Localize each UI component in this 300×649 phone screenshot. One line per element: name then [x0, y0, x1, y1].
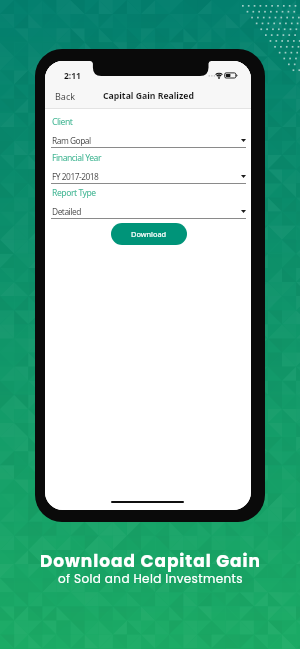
- staticText: Capital Gain Realized: [103, 90, 194, 102]
- staticText: Report Type: [52, 187, 96, 199]
- staticText: FY 2017-2018: [52, 171, 99, 182]
- button[interactable]: Client: [51, 119, 246, 148]
- staticText: Back: [55, 90, 76, 102]
- button[interactable]: Report Type: [51, 190, 246, 219]
- staticText: of Sold and Held Investments: [58, 570, 243, 587]
- button[interactable]: Back: [50, 86, 81, 106]
- staticText: Download: [131, 229, 167, 239]
- staticText: 2:11: [64, 70, 81, 82]
- button[interactable]: Download: [111, 223, 187, 245]
- button[interactable]: Financial Year: [51, 155, 246, 184]
- staticText: Detailed: [52, 206, 81, 217]
- staticText: Client: [52, 116, 73, 128]
- staticText: Download Capital Gain: [40, 549, 261, 573]
- staticText: Financial Year: [52, 152, 102, 164]
- staticText: Ram Gopal: [52, 135, 91, 146]
